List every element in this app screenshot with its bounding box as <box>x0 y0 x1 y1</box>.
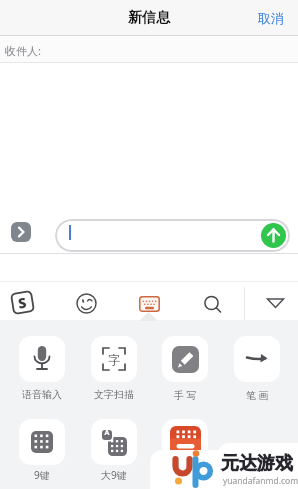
button[interactable] <box>139 296 160 312</box>
button[interactable]: 收件人: <box>0 37 298 63</box>
button[interactable]: 取消 <box>258 10 284 26</box>
staticText: 收件人: <box>5 43 41 58</box>
staticText: 文字扫描 <box>94 388 134 401</box>
button[interactable] <box>19 419 65 465</box>
button[interactable] <box>261 223 286 248</box>
staticText: 语音输入 <box>22 388 62 401</box>
staticText: A <box>102 428 112 438</box>
button[interactable] <box>11 222 31 242</box>
button[interactable] <box>203 295 223 315</box>
button[interactable] <box>162 336 208 382</box>
staticText: 9键 <box>34 468 50 482</box>
staticText: 大9键 <box>101 468 127 482</box>
button[interactable] <box>55 219 290 252</box>
staticText: yuandafanmd.com <box>223 475 298 487</box>
button[interactable] <box>265 297 286 309</box>
button[interactable] <box>234 336 280 382</box>
staticText: 新信息 <box>128 9 170 27</box>
button[interactable]: A <box>91 419 137 465</box>
button[interactable] <box>19 336 65 382</box>
staticText: 取消 <box>258 10 284 26</box>
button[interactable] <box>162 419 208 465</box>
button[interactable] <box>76 293 97 314</box>
staticText: 笔 画 <box>246 388 269 402</box>
staticText: S <box>17 292 28 313</box>
staticText: 字 <box>108 352 120 367</box>
button[interactable]: 字 <box>91 336 137 382</box>
button[interactable]: S <box>10 290 35 315</box>
staticText: 元达游戏 <box>221 452 293 475</box>
staticText: 手 写 <box>174 388 197 402</box>
